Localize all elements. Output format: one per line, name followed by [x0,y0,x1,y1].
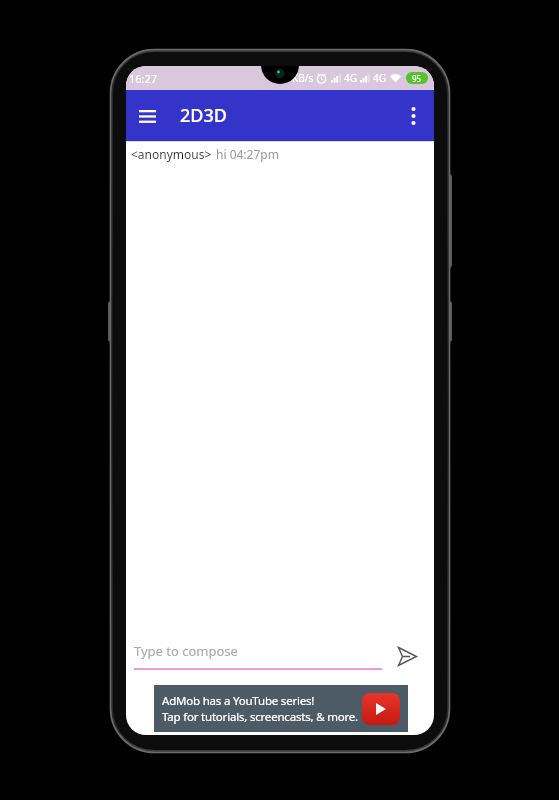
button[interactable]: AdMob has a YouTube series! [154,685,408,732]
staticText: Tap for tutorials, screencasts, & more. [162,709,358,725]
staticText: KB/s [292,71,314,85]
button[interactable] [400,103,426,129]
button[interactable] [134,102,162,130]
staticText: 4G [344,71,357,85]
staticText: 4G [373,71,386,85]
staticText: AdMob has a YouTube series! [162,693,315,709]
staticText: 2D3D [180,103,227,128]
staticText: hi 04:27pm [216,146,279,162]
staticText: Type to compose [134,642,238,660]
staticText: <anonymous> [131,146,212,162]
staticText: 16:27 [129,71,158,86]
button[interactable] [390,639,424,673]
staticText: 95 [412,73,422,84]
